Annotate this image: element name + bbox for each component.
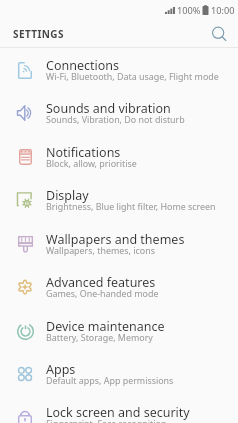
staticText: Device maintenance [46,318,165,335]
staticText: Advanced features [46,274,156,291]
staticText: Connections [46,57,119,74]
button[interactable]: Apps [0,352,238,395]
button[interactable]: Sounds and vibration [0,91,238,135]
staticText: Sounds and vibration [46,100,171,117]
button[interactable]: Advanced features [0,265,238,309]
staticText: 10:00 [211,4,235,17]
button[interactable]: Connections [0,48,238,91]
staticText: Wallpapers, themes, icons [46,244,155,256]
staticText: SETTINGS [13,27,64,41]
staticText: Lock screen and security [46,404,190,421]
button[interactable]: Device maintenance [0,309,238,352]
button[interactable]: Display [0,178,238,222]
staticText: Default apps, App permissions [46,374,174,386]
button[interactable]: Lock screen and security [0,395,238,423]
staticText: Battery, Storage, Memory [46,331,153,343]
staticText: Games, One-handed mode [46,287,159,299]
staticText: Fingerprint, Face recognition [46,417,167,423]
staticText: Wi-Fi, Bluetooth, Data usage, Flight mod… [46,70,219,82]
staticText: Notifications [46,144,121,161]
button[interactable]: Search [206,21,232,47]
staticText: Display [46,187,89,204]
button[interactable]: Wallpapers and themes [0,222,238,265]
staticText: Block, allow, prioritise [46,157,137,169]
staticText: Apps [46,361,76,378]
staticText: Sounds, Vibration, Do not disturb [46,113,185,125]
button[interactable]: Notifications [0,135,238,178]
staticText: Wallpapers and themes [46,231,185,248]
staticText: Brightness, Blue light filter, Home scre… [46,200,216,212]
staticText: 100% [177,4,201,17]
